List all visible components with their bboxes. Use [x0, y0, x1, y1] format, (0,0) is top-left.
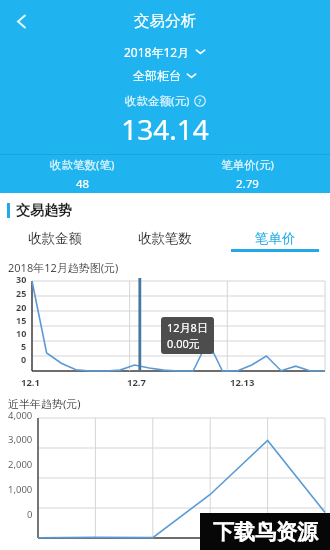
staticText: 笔单价(元)	[221, 157, 274, 173]
staticText: 10	[16, 327, 27, 339]
staticText: 3,000	[8, 433, 33, 446]
staticText: 12.1	[21, 376, 40, 389]
staticText: 全部柜台	[133, 68, 181, 83]
staticText: 5	[21, 340, 27, 352]
staticText: 1,000	[8, 483, 33, 496]
staticText: 15	[16, 314, 27, 326]
staticText: 0	[21, 353, 27, 365]
button[interactable]: 收款金额	[0, 225, 110, 252]
staticText: 交易趋势	[16, 202, 72, 218]
button[interactable]: 全部柜台	[0, 65, 330, 86]
staticText: 134.14	[0, 110, 330, 148]
staticText: 2.79	[236, 176, 259, 192]
staticText: 收款笔数	[138, 230, 192, 247]
staticText: 笔单价	[255, 230, 296, 247]
staticText: 近半年趋势(元)	[8, 396, 81, 411]
staticText: 30	[16, 273, 27, 285]
staticText: 2018年12月趋势图(元)	[8, 260, 119, 275]
staticText: 12.13	[230, 376, 255, 389]
staticText: 2,000	[8, 458, 33, 471]
staticText: 12月8日	[167, 320, 208, 335]
staticText: 交易分析	[134, 11, 196, 31]
button[interactable]: 笔单价(元)	[165, 155, 330, 193]
staticText: 48	[76, 176, 90, 192]
staticText: 20	[16, 301, 27, 313]
staticText: 2018年12月	[124, 44, 190, 60]
staticText: 0	[27, 508, 33, 521]
staticText: 0.00元	[167, 336, 200, 351]
button[interactable]: 收款笔数	[110, 225, 220, 252]
button[interactable]: 2018年12月	[0, 41, 330, 62]
staticText: 收款笔数(笔)	[50, 157, 115, 173]
staticText: 收款金额	[28, 230, 82, 247]
staticText: 收款金额(元)	[125, 93, 190, 109]
button[interactable]: Back	[5, 5, 37, 37]
staticText: ?	[198, 96, 202, 106]
button[interactable]: 收款笔数(笔)	[0, 155, 165, 193]
button[interactable]: Help	[194, 95, 206, 107]
staticText: 下载鸟资源	[213, 519, 318, 545]
staticText: 12.7	[127, 376, 146, 389]
staticText: 25	[16, 287, 27, 299]
staticText: 4,000	[8, 409, 33, 422]
button[interactable]: 笔单价	[220, 225, 330, 252]
